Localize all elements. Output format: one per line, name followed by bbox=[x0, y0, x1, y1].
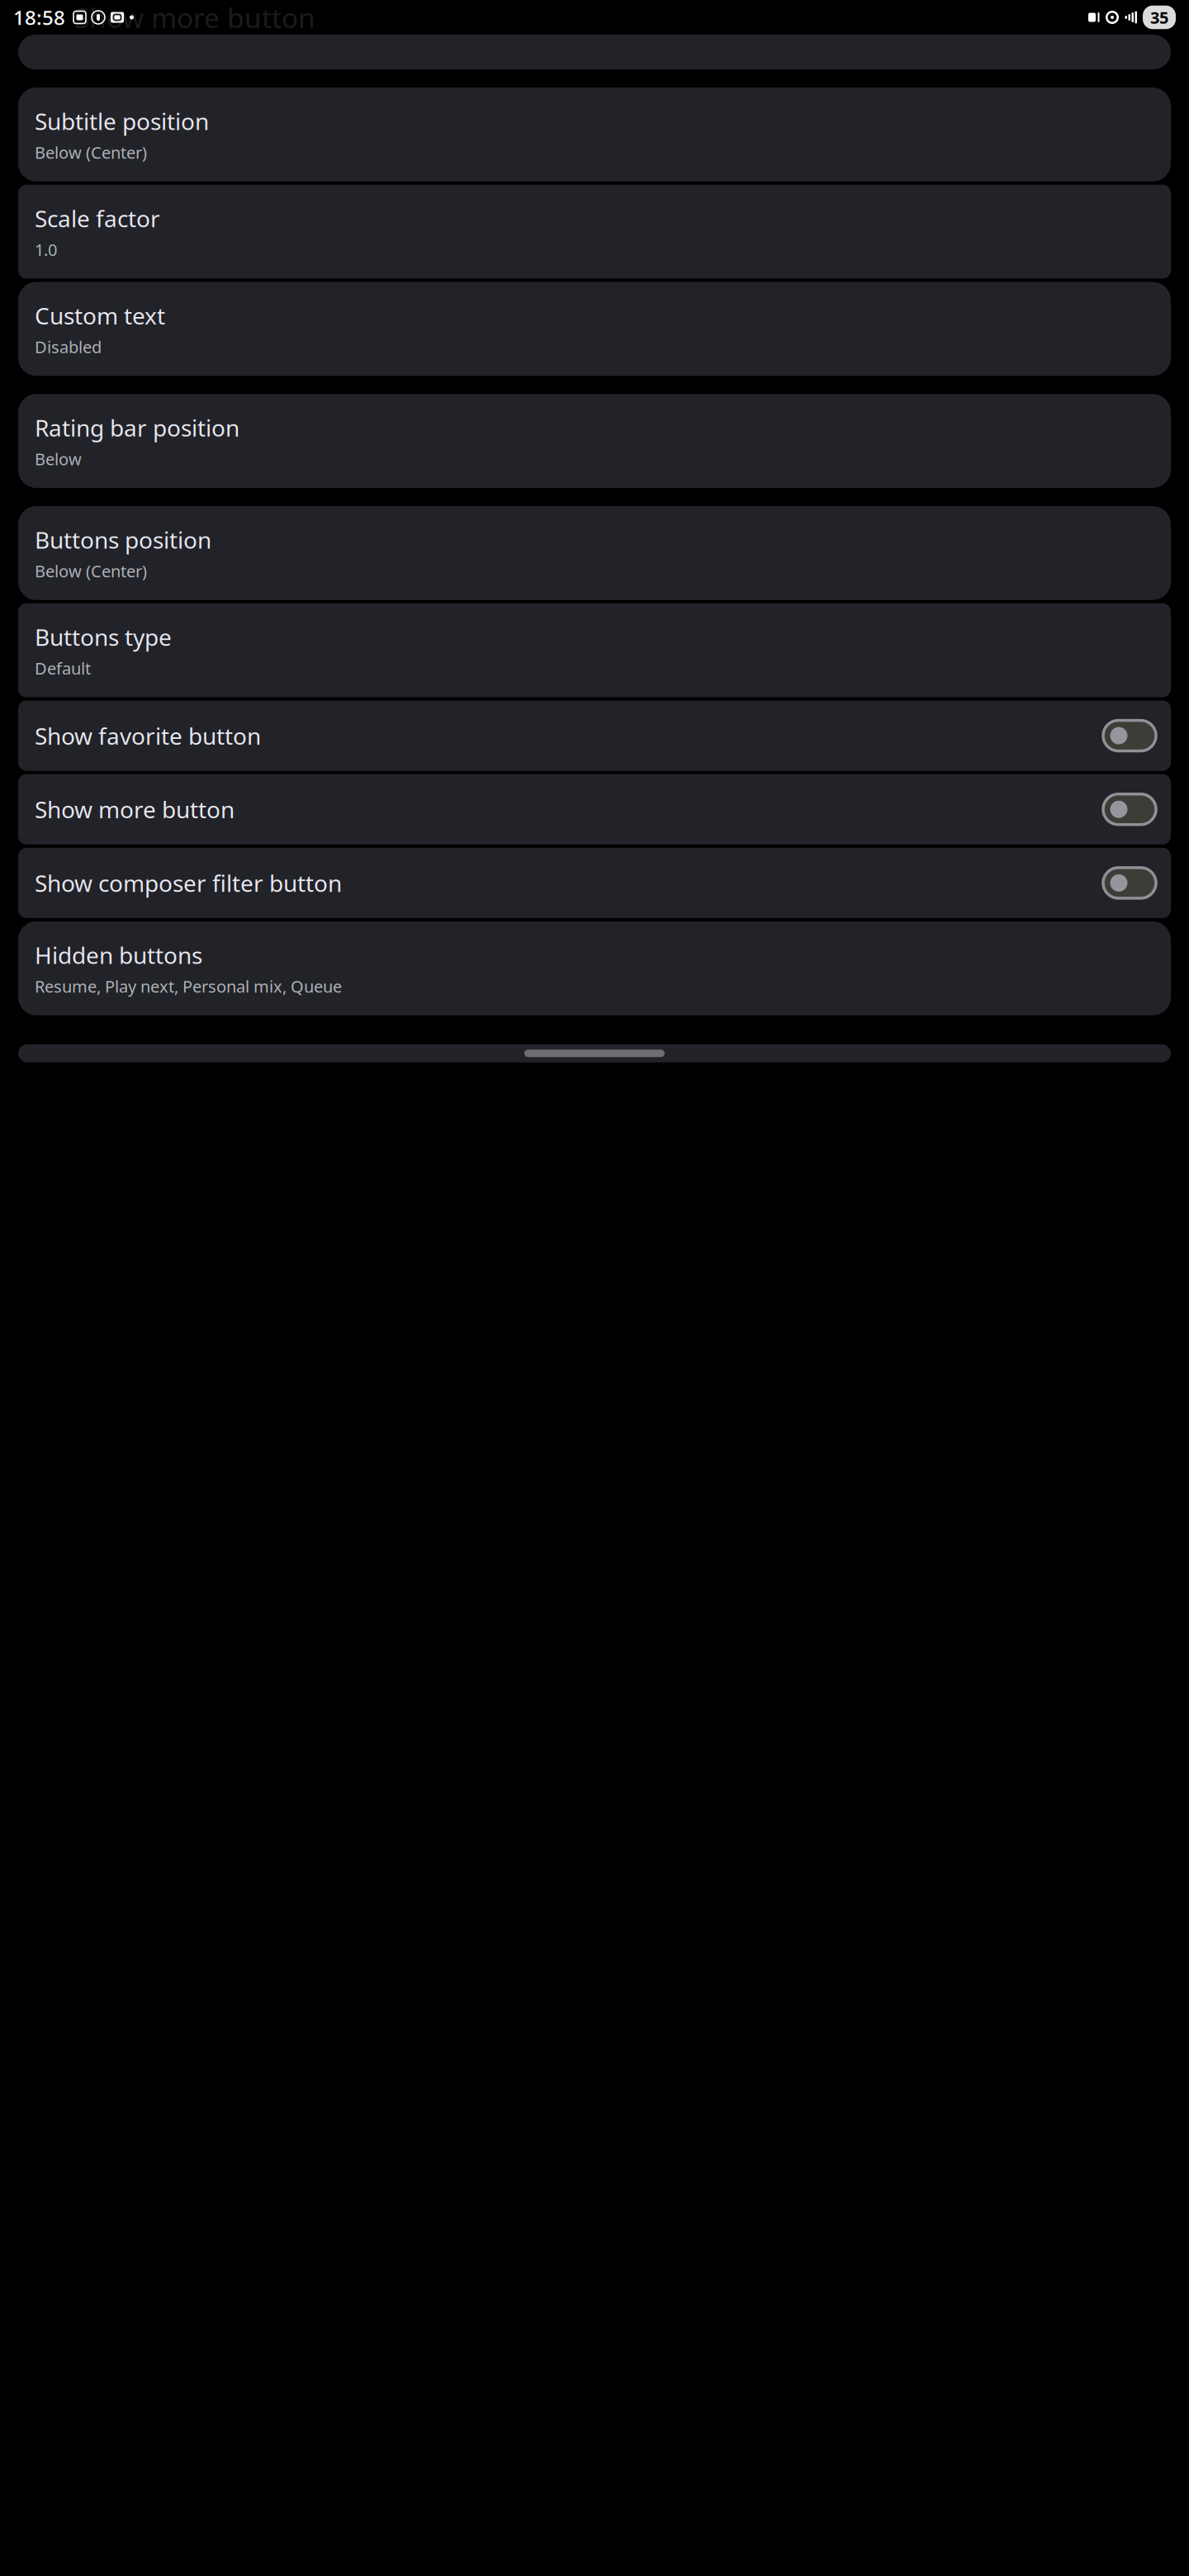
button[interactable]: Buttons position bbox=[18, 506, 1171, 600]
button[interactable]: Show favorite button bbox=[18, 701, 1171, 771]
staticText: Rating bar position bbox=[35, 412, 239, 443]
staticText: Buttons position bbox=[35, 524, 211, 555]
staticText: Subtitle position bbox=[35, 106, 209, 136]
button[interactable]: Subtitle position bbox=[18, 88, 1171, 181]
staticText: Below (Center) bbox=[35, 560, 147, 582]
staticText: 18:58 bbox=[13, 4, 65, 31]
button[interactable]: Show composer filter button bbox=[18, 848, 1171, 918]
staticText: Show more button bbox=[74, 0, 315, 36]
staticText: Show composer filter button bbox=[35, 868, 342, 898]
staticText: Resume, Play next, Personal mix, Queue bbox=[35, 975, 342, 997]
button[interactable]: Custom text bbox=[18, 282, 1171, 376]
staticText: Below (Center) bbox=[35, 141, 147, 163]
staticText: Show more button bbox=[35, 794, 234, 825]
staticText: 35 bbox=[1150, 6, 1168, 28]
button[interactable]: Buttons type bbox=[18, 603, 1171, 697]
staticText: 1.0 bbox=[35, 239, 57, 260]
staticText: Below bbox=[35, 448, 82, 470]
staticText: Custom text bbox=[35, 300, 165, 331]
button[interactable]: Hidden buttons bbox=[18, 921, 1171, 1015]
staticText: Scale factor bbox=[35, 203, 160, 234]
staticText: Buttons type bbox=[35, 621, 172, 652]
staticText: Show favorite button bbox=[35, 720, 261, 751]
button[interactable]: Scale factor bbox=[18, 185, 1171, 279]
button[interactable]: Rating bar position bbox=[18, 394, 1171, 488]
staticText: Disabled bbox=[35, 336, 102, 358]
button[interactable]: Show more button bbox=[18, 774, 1171, 844]
staticText: Default bbox=[35, 657, 91, 679]
staticText: Hidden buttons bbox=[35, 940, 202, 970]
